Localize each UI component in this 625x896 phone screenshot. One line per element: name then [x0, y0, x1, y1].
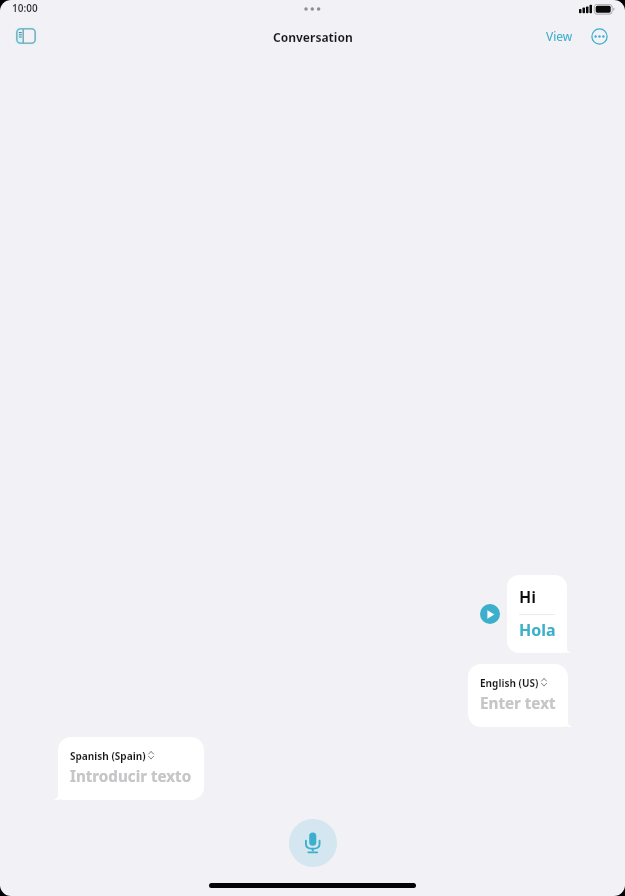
staticText: Conversation	[273, 29, 353, 45]
button[interactable]: Record audio	[289, 819, 337, 867]
staticText: View	[546, 28, 573, 44]
staticText: English (US)	[480, 676, 539, 690]
staticText: 10:00	[12, 1, 38, 15]
button[interactable]: English (US)	[468, 664, 573, 727]
staticText: Hola	[519, 619, 555, 641]
staticText: Hi	[519, 586, 537, 608]
staticText: Spanish (Spain)	[70, 749, 146, 763]
staticText: Enter text	[480, 693, 556, 714]
button[interactable]: More options	[587, 24, 612, 49]
button[interactable]: View	[540, 25, 579, 47]
button[interactable]: Hi	[507, 575, 572, 653]
staticText: Introducir texto	[70, 766, 192, 787]
button[interactable]: Spanish (Spain)	[53, 737, 204, 800]
button[interactable]: Play translation	[480, 604, 500, 624]
button[interactable]: Show sidebar	[8, 22, 44, 50]
